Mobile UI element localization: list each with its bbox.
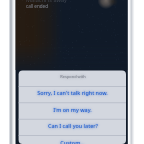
button[interactable]: Can I call you later? [19,119,126,135]
button[interactable]: I'm on my way. [19,102,126,118]
button[interactable]: Custom… [19,135,126,144]
staticText: Can I call you later? [48,122,98,129]
staticText: Sorry, I can't talk right now. [37,89,108,96]
staticText: call ended [26,3,49,9]
staticText: Respond with [60,74,86,79]
staticText: Malachi is away [26,0,67,4]
staticText: I'm on my way. [53,106,92,113]
button[interactable]: Sorry, I can't talk right now. [19,86,126,102]
staticText: Custom… [60,139,85,144]
